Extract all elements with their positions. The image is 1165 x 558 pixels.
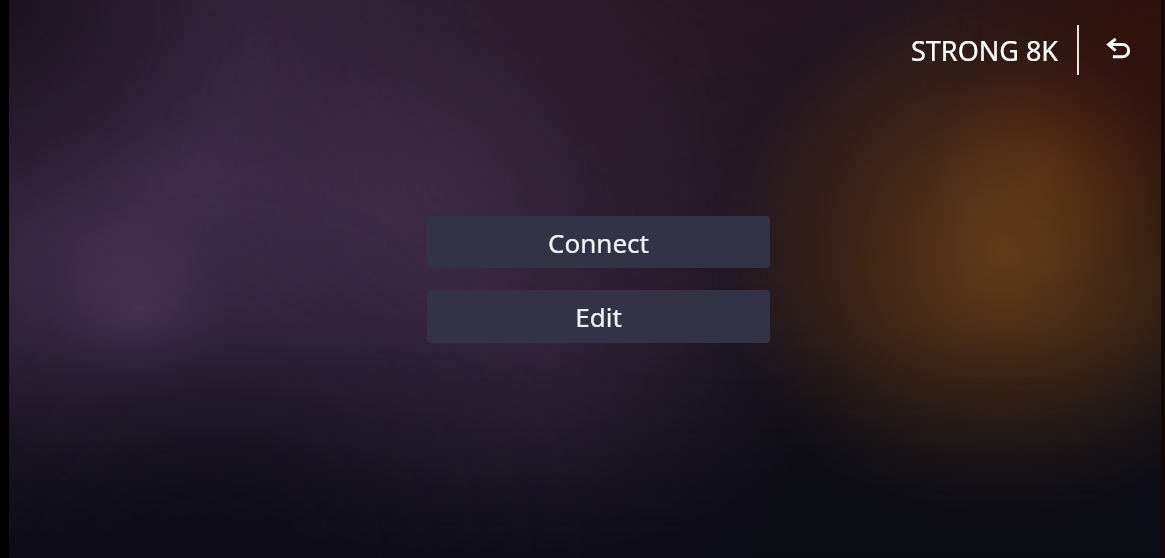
staticText: Connect [548,225,649,260]
button[interactable]: Edit [427,290,770,343]
staticText: Edit [575,299,622,334]
staticText: STRONG 8K [911,32,1059,69]
button[interactable]: Back [1099,30,1139,70]
button[interactable]: Connect [427,216,770,268]
